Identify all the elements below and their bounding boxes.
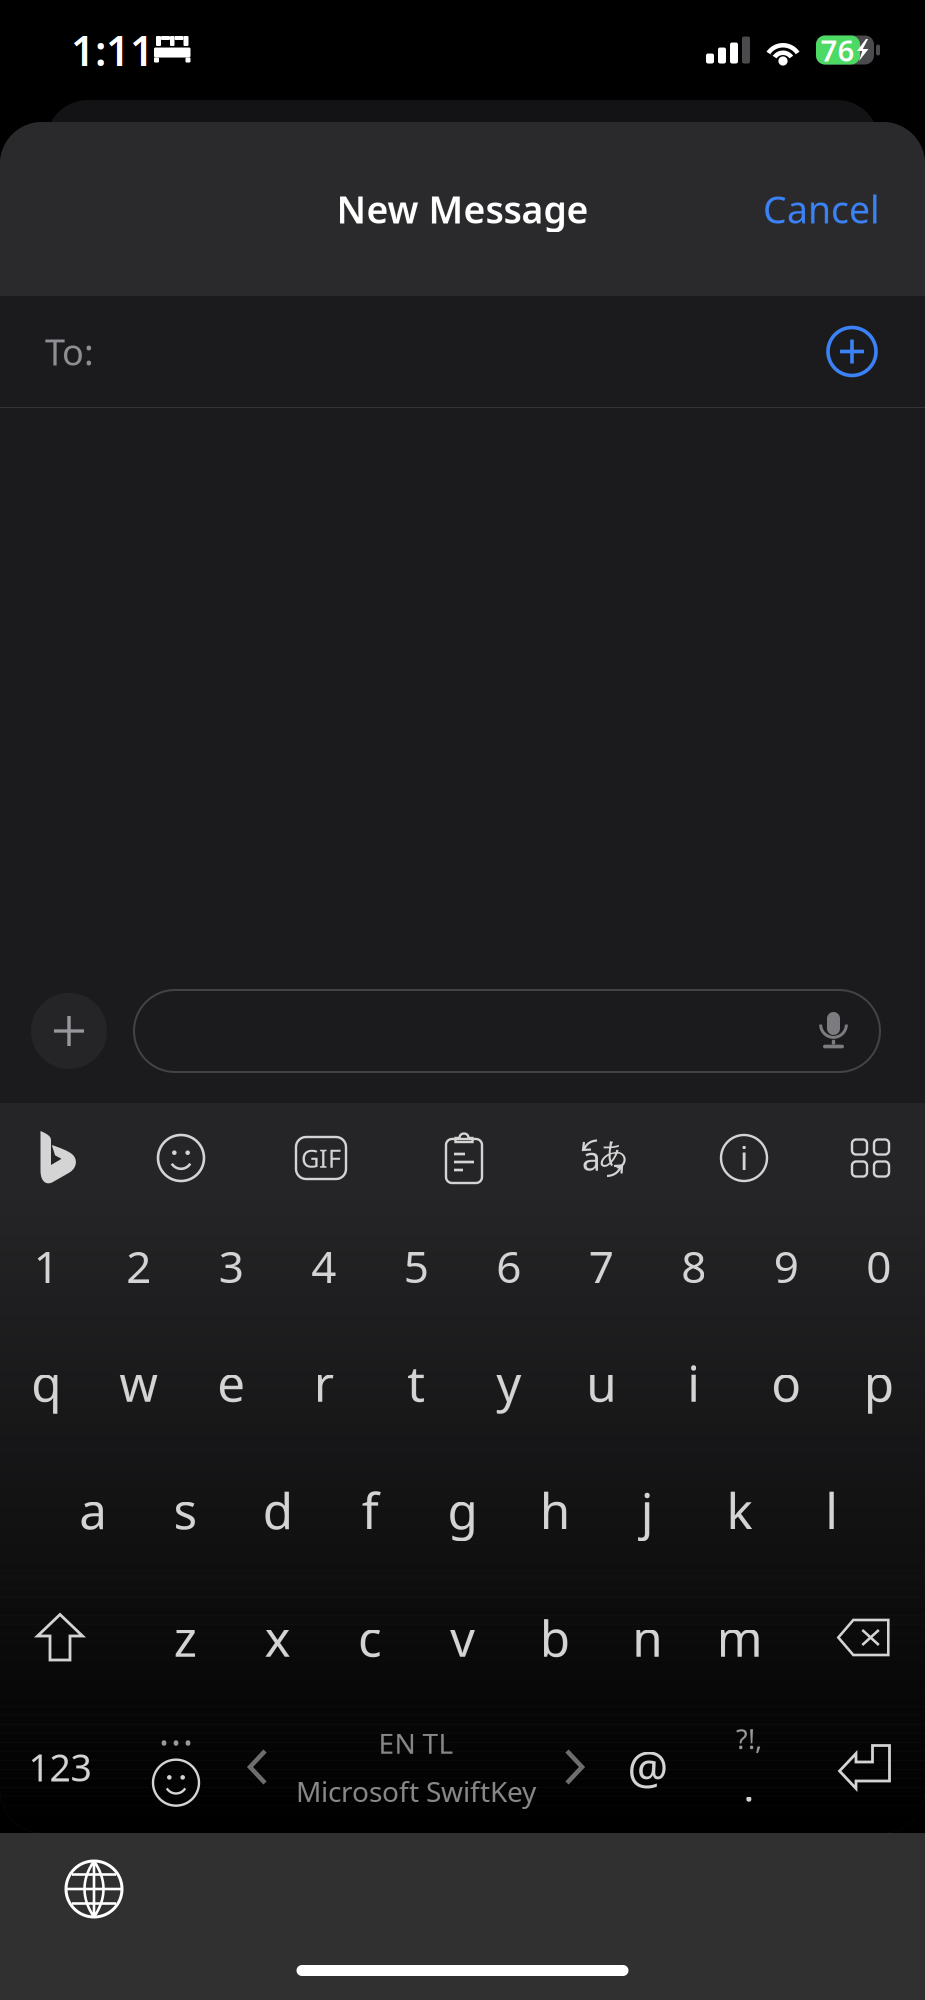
button[interactable]: Next language — [548, 1701, 602, 1833]
button[interactable]: p — [832, 1319, 925, 1446]
staticText: g — [447, 1477, 477, 1543]
staticText: e — [217, 1350, 245, 1415]
button[interactable]: a — [47, 1446, 139, 1574]
button[interactable]: b — [509, 1574, 601, 1701]
button[interactable]: y — [462, 1319, 555, 1446]
staticText: 2 — [126, 1237, 151, 1295]
staticText: GIF — [301, 1141, 341, 1175]
staticText: p — [864, 1350, 894, 1415]
button[interactable]: @ — [602, 1701, 694, 1833]
staticText: u — [586, 1350, 616, 1415]
button[interactable]: q — [0, 1319, 92, 1446]
staticText: a — [79, 1477, 107, 1543]
button[interactable]: 3 — [185, 1213, 277, 1319]
staticText: o — [771, 1350, 801, 1415]
button[interactable]: Cancel — [743, 168, 900, 250]
button[interactable]: EN TL — [284, 1701, 548, 1833]
staticText: @ — [627, 1737, 668, 1797]
button[interactable]: h — [509, 1446, 601, 1574]
staticText: l — [825, 1477, 838, 1543]
staticText: 6 — [496, 1237, 521, 1295]
staticText: c — [358, 1605, 382, 1670]
button[interactable]: n — [601, 1574, 693, 1701]
button[interactable]: Translate — [534, 1103, 672, 1213]
staticText: z — [174, 1605, 197, 1670]
button[interactable]: 8 — [647, 1213, 740, 1319]
button[interactable]: Add attachment — [31, 993, 107, 1069]
button[interactable]: x — [231, 1574, 324, 1701]
button[interactable]: 6 — [462, 1213, 555, 1319]
staticText: m — [717, 1605, 763, 1670]
button[interactable]: c — [324, 1574, 416, 1701]
button[interactable]: More — [816, 1103, 925, 1213]
button[interactable]: 0 — [832, 1213, 925, 1319]
staticText: 76 — [820, 30, 854, 69]
button[interactable]: t — [370, 1319, 462, 1446]
staticText: ?!, — [736, 1721, 762, 1757]
button[interactable]: w — [92, 1319, 185, 1446]
button[interactable]: Delete — [794, 1574, 925, 1701]
staticText: あ — [599, 1135, 629, 1171]
staticText: 0 — [866, 1237, 891, 1295]
button[interactable]: GIF — [248, 1103, 394, 1213]
staticText: q — [31, 1350, 61, 1415]
staticText: 3 — [219, 1237, 244, 1295]
staticText: . — [743, 1760, 754, 1813]
staticText: 1 — [34, 1237, 59, 1295]
button[interactable]: 2 — [92, 1213, 185, 1319]
button[interactable]: j — [601, 1446, 693, 1574]
staticText: EN TL — [378, 1724, 453, 1761]
button[interactable]: Clipboard — [394, 1103, 534, 1213]
button[interactable]: 5 — [370, 1213, 462, 1319]
button[interactable]: s — [139, 1446, 232, 1574]
button[interactable]: d — [232, 1446, 324, 1574]
staticText: Cancel — [763, 184, 880, 234]
staticText: a — [582, 1136, 601, 1180]
button[interactable]: i — [647, 1319, 740, 1446]
staticText: • • • — [160, 1728, 192, 1757]
staticText: y — [496, 1350, 521, 1415]
button[interactable]: m — [693, 1574, 786, 1701]
button[interactable]: Shift — [0, 1574, 120, 1701]
button[interactable]: Emoji — [114, 1103, 248, 1213]
staticText: r — [314, 1350, 334, 1415]
staticText: b — [540, 1605, 570, 1670]
button[interactable]: Add contact — [820, 319, 884, 383]
button[interactable]: Previous language — [232, 1701, 284, 1833]
button[interactable]: ?!, — [694, 1701, 804, 1833]
button[interactable]: Info — [672, 1103, 816, 1213]
button[interactable]: z — [139, 1574, 231, 1701]
staticText: n — [632, 1605, 662, 1670]
button[interactable]: u — [555, 1319, 647, 1446]
button[interactable]: k — [693, 1446, 786, 1574]
button[interactable]: f — [324, 1446, 416, 1574]
button[interactable]: v — [416, 1574, 509, 1701]
staticText: h — [540, 1477, 570, 1543]
staticText: Microsoft SwiftKey — [296, 1772, 536, 1810]
staticText: To: — [45, 328, 94, 375]
staticText: v — [450, 1605, 475, 1670]
button[interactable]: Bing — [0, 1103, 114, 1213]
button[interactable]: 9 — [740, 1213, 832, 1319]
staticText: x — [265, 1605, 291, 1670]
staticText: w — [119, 1350, 158, 1415]
button[interactable]: e — [185, 1319, 277, 1446]
staticText: f — [362, 1477, 379, 1543]
staticText: 123 — [28, 1742, 91, 1792]
button[interactable]: Return — [804, 1701, 925, 1833]
button[interactable]: r — [277, 1319, 370, 1446]
button[interactable]: Switch keyboard — [0, 1833, 122, 1917]
button[interactable]: 1 — [0, 1213, 92, 1319]
button[interactable]: l — [786, 1446, 878, 1574]
staticText: j — [641, 1477, 654, 1543]
button[interactable]: 7 — [555, 1213, 647, 1319]
button[interactable]: 4 — [277, 1213, 370, 1319]
staticText: New Message — [336, 184, 588, 234]
button[interactable]: Emoji keyboard — [120, 1701, 232, 1833]
button[interactable]: 123 — [0, 1701, 120, 1833]
staticText: k — [726, 1477, 752, 1543]
button[interactable]: g — [416, 1446, 509, 1574]
staticText: t — [407, 1350, 425, 1415]
staticText: s — [173, 1477, 197, 1543]
button[interactable]: o — [740, 1319, 832, 1446]
